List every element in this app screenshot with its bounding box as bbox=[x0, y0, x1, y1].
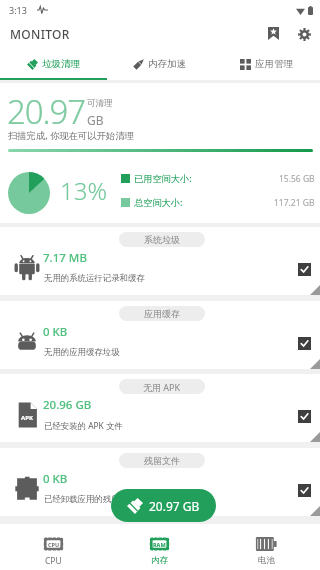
staticText: 垃圾清理 bbox=[42, 58, 80, 70]
staticText: 内存加速 bbox=[148, 58, 186, 70]
staticText: 无用 APK bbox=[143, 381, 181, 393]
staticText: 应用缓存 bbox=[144, 308, 180, 319]
button[interactable]: CPU bbox=[0, 524, 106, 570]
staticText: APK bbox=[21, 414, 33, 422]
button[interactable]: Select 应用缓存 bbox=[298, 337, 311, 350]
button[interactable]: 残留文件 bbox=[0, 448, 320, 516]
button[interactable]: 20.97 GB bbox=[111, 489, 216, 522]
button[interactable]: Bookmarks bbox=[262, 22, 285, 45]
staticText: 0 KB bbox=[43, 471, 68, 487]
button[interactable]: 电池 bbox=[213, 524, 320, 570]
staticText: 无用的系统运行记录和缓存 bbox=[44, 273, 145, 284]
button[interactable]: 应用管理 bbox=[213, 50, 320, 78]
staticText: RAM bbox=[153, 541, 166, 548]
staticText: 7.17 MB bbox=[43, 250, 87, 266]
button[interactable]: 内存加速 bbox=[106, 50, 213, 78]
button[interactable]: 应用缓存 bbox=[0, 301, 320, 369]
staticText: 无用的应用缓存垃圾 bbox=[44, 347, 120, 358]
staticText: 可清理 bbox=[87, 98, 113, 109]
staticText: 残留文件 bbox=[144, 455, 180, 466]
button[interactable]: 垃圾清理 bbox=[0, 50, 106, 78]
button[interactable]: 系统垃圾 bbox=[0, 227, 320, 295]
staticText: 总空间大小: bbox=[134, 196, 183, 209]
button[interactable]: 无用 APK bbox=[0, 374, 320, 442]
staticText: 系统垃圾 bbox=[144, 234, 180, 245]
button[interactable]: Select 残留文件 bbox=[298, 484, 311, 497]
staticText: 13% bbox=[60, 174, 107, 207]
staticText: 3:13 bbox=[9, 4, 27, 16]
staticText: 20.96 GB bbox=[43, 397, 92, 413]
staticText: 117.21 GB bbox=[274, 197, 315, 209]
staticText: 20.97 bbox=[7, 89, 85, 134]
staticText: CPU bbox=[45, 555, 62, 567]
staticText: 已用空间大小: bbox=[134, 172, 192, 185]
staticText: GB bbox=[87, 112, 104, 128]
staticText: 扫描完成, 你现在可以开始清理 bbox=[8, 129, 134, 142]
staticText: 内存 bbox=[151, 555, 168, 566]
staticText: 15.56 GB bbox=[279, 173, 315, 185]
staticText: 已经安装的 APK 文件 bbox=[44, 420, 123, 431]
staticText: 已经卸载应用的残留文件 bbox=[44, 494, 137, 505]
staticText: 0 KB bbox=[43, 324, 68, 340]
button[interactable]: Settings bbox=[293, 23, 315, 45]
staticText: MONITOR bbox=[10, 26, 70, 42]
button[interactable]: RAM bbox=[106, 524, 213, 570]
button[interactable]: Select 无用 APK bbox=[298, 410, 311, 423]
button[interactable]: Select 系统垃圾 bbox=[298, 263, 311, 276]
staticText: 应用管理 bbox=[255, 58, 293, 70]
staticText: 20.97 GB bbox=[149, 498, 200, 514]
staticText: 电池 bbox=[258, 555, 275, 566]
staticText: CPU bbox=[48, 541, 60, 548]
